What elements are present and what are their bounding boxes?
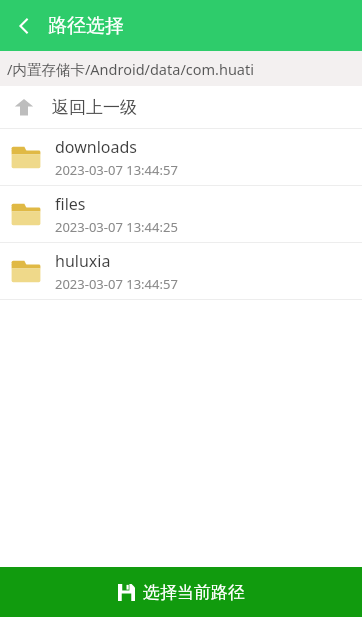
button[interactable]: 选择当前路径 bbox=[0, 567, 362, 617]
staticText: downloads bbox=[55, 136, 137, 158]
button[interactable]: 返回上一级 bbox=[0, 86, 362, 128]
staticText: 路径选择 bbox=[48, 14, 124, 38]
button[interactable]: downloads bbox=[0, 129, 362, 185]
button[interactable]: files bbox=[0, 186, 362, 242]
button[interactable]: Back bbox=[6, 8, 42, 44]
staticText: 2023-03-07 13:44:57 bbox=[55, 161, 178, 179]
staticText: 2023-03-07 13:44:25 bbox=[55, 218, 178, 236]
button[interactable]: huluxia bbox=[0, 243, 362, 299]
staticText: 2023-03-07 13:44:57 bbox=[55, 275, 178, 293]
staticText: huluxia bbox=[55, 250, 111, 272]
staticText: /内置存储卡/Android/data/com.huati bbox=[7, 59, 254, 79]
staticText: 返回上一级 bbox=[52, 97, 137, 118]
staticText: 选择当前路径 bbox=[143, 582, 245, 603]
staticText: files bbox=[55, 193, 86, 215]
